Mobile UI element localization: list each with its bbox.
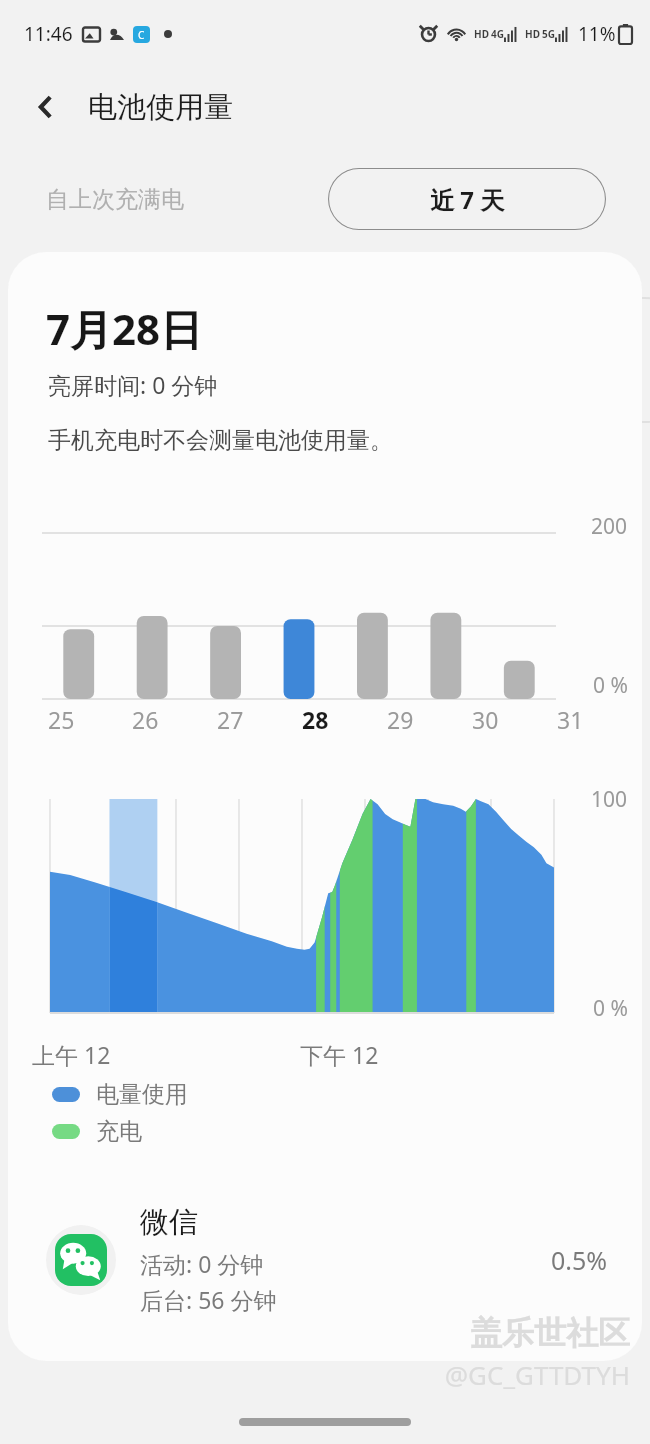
staticText: 电量使用 <box>96 1080 188 1109</box>
staticText: 31 <box>557 704 584 735</box>
staticText: 7月28日 <box>46 300 203 357</box>
staticText: 充电 <box>96 1117 142 1146</box>
staticText: 0 % <box>593 671 628 700</box>
staticText: 活动: 0 分钟 <box>140 1248 264 1279</box>
staticText: @GC_GTTDTYH <box>444 1357 630 1392</box>
staticText: 26 <box>132 704 159 735</box>
staticText: 亮屏时间: 0 分钟 <box>48 369 218 400</box>
staticText: 0.5% <box>551 1243 608 1277</box>
staticText: 11:46 <box>24 21 73 47</box>
button[interactable]: Back <box>18 79 74 135</box>
staticText: 28 <box>302 704 329 735</box>
button[interactable]: 近 7 天 <box>328 168 606 230</box>
staticText: 27 <box>217 704 244 735</box>
staticText: 25 <box>48 704 75 735</box>
staticText: HD <box>525 27 540 41</box>
staticText: C <box>138 28 145 42</box>
button[interactable]: 微信 <box>8 1204 642 1315</box>
staticText: 微信 <box>140 1204 198 1241</box>
staticText: 近 7 天 <box>430 183 505 216</box>
staticText: 11% <box>578 21 616 47</box>
staticText: 手机充电时不会测量电池使用量。 <box>48 426 393 455</box>
staticText: 100 <box>591 785 628 814</box>
staticText: HD <box>474 27 489 41</box>
staticText: 上午 12 <box>32 1039 111 1070</box>
staticText: 下午 12 <box>300 1039 379 1070</box>
button[interactable]: 自上次充满电 <box>30 173 200 226</box>
staticText: 电池使用量 <box>88 89 233 126</box>
staticText: 29 <box>387 704 414 735</box>
staticText: 200 <box>591 512 628 541</box>
staticText: 0 % <box>593 994 628 1023</box>
staticText: 4G <box>491 27 504 41</box>
staticText: 5G <box>542 27 555 41</box>
staticText: 自上次充满电 <box>46 185 184 214</box>
staticText: 后台: 56 分钟 <box>140 1284 277 1315</box>
staticText: 盖乐世社区 <box>470 1313 630 1353</box>
staticText: 30 <box>472 704 499 735</box>
